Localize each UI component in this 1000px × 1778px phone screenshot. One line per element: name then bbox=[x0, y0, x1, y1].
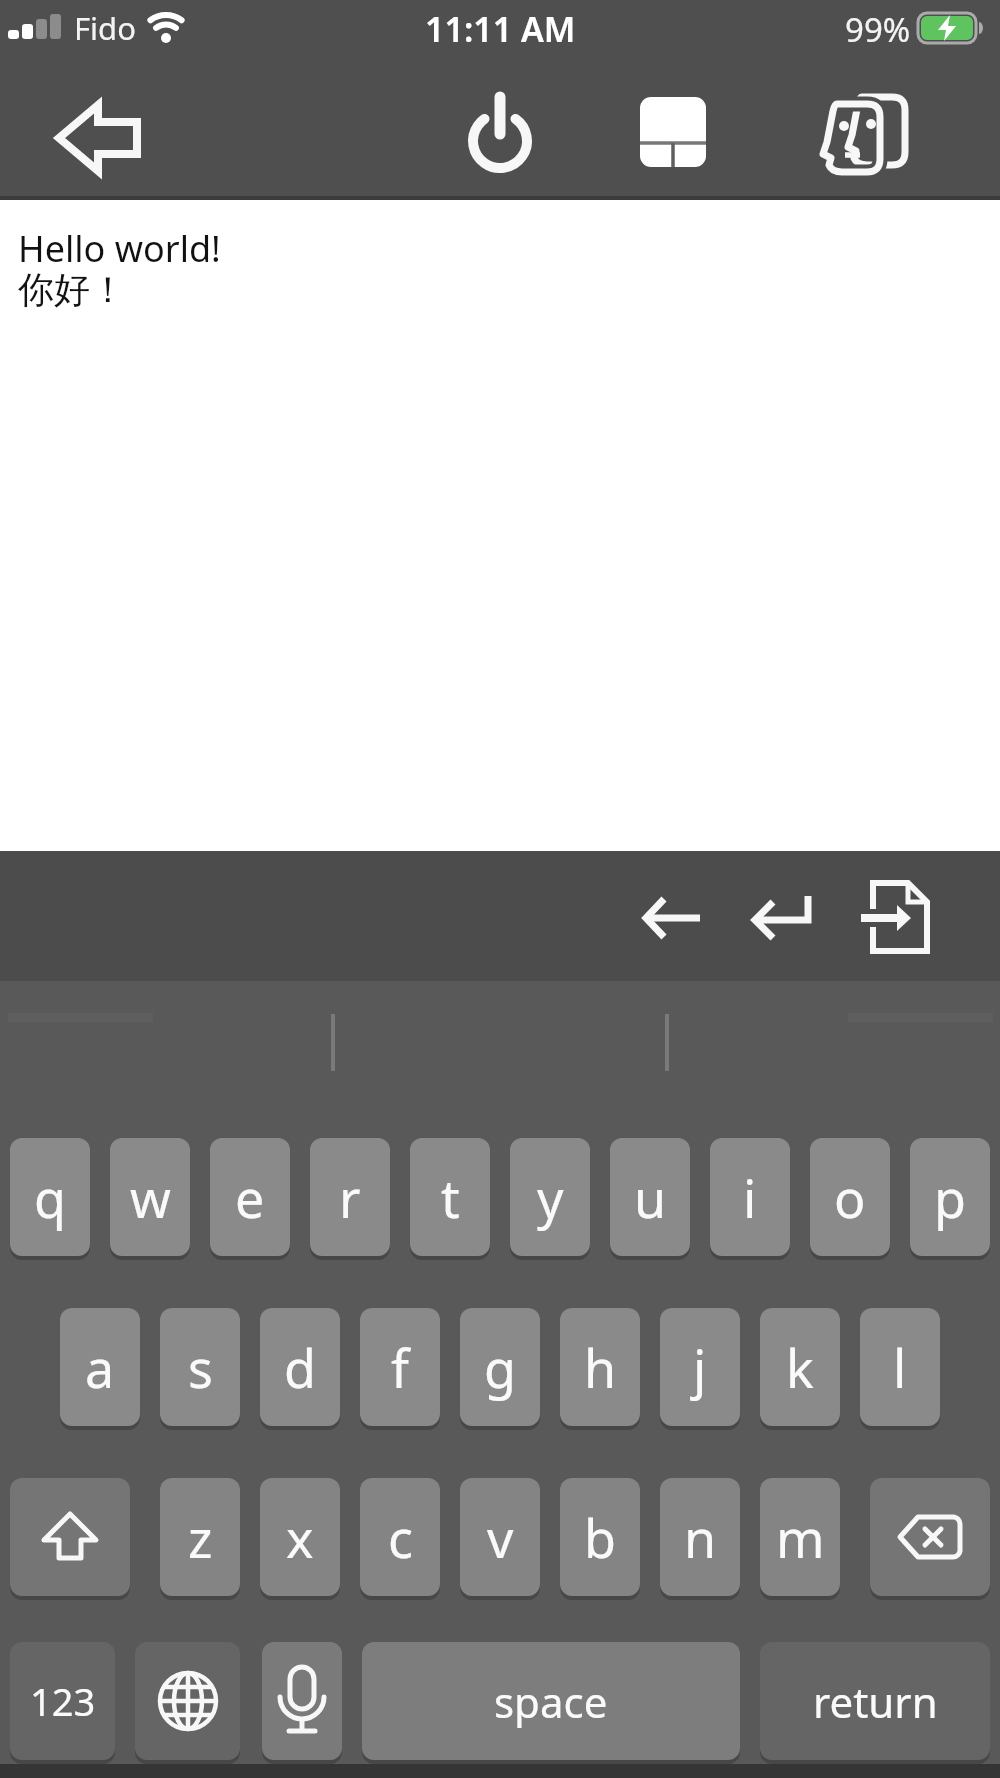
staticText: n bbox=[684, 1502, 717, 1573]
button[interactable]: a bbox=[60, 1308, 140, 1426]
button[interactable] bbox=[618, 79, 728, 184]
staticText: e bbox=[235, 1162, 265, 1233]
staticText: 11:11 AM bbox=[425, 6, 576, 52]
button[interactable]: i bbox=[710, 1138, 790, 1256]
button[interactable]: 123 bbox=[10, 1642, 115, 1760]
staticText: w bbox=[130, 1162, 171, 1233]
staticText: return bbox=[813, 1673, 938, 1730]
staticText: v bbox=[487, 1502, 514, 1573]
staticText: a bbox=[85, 1332, 115, 1403]
staticText: Fido bbox=[74, 7, 136, 49]
button[interactable]: f bbox=[360, 1308, 440, 1426]
button[interactable]: u bbox=[610, 1138, 690, 1256]
staticText: m bbox=[776, 1502, 825, 1573]
staticText: i bbox=[743, 1162, 757, 1233]
button[interactable]: g bbox=[460, 1308, 540, 1426]
staticText: 123 bbox=[30, 1675, 96, 1727]
staticText: 99% bbox=[845, 7, 911, 52]
staticText: j bbox=[693, 1332, 707, 1403]
staticText: space bbox=[494, 1673, 608, 1730]
button[interactable]: x bbox=[260, 1478, 340, 1596]
button[interactable] bbox=[10, 1478, 130, 1596]
button[interactable]: j bbox=[660, 1308, 740, 1426]
staticText: r bbox=[339, 1162, 361, 1233]
button[interactable]: h bbox=[560, 1308, 640, 1426]
button[interactable]: c bbox=[360, 1478, 440, 1596]
button[interactable]: d bbox=[260, 1308, 340, 1426]
staticText: t bbox=[441, 1162, 460, 1233]
staticText: u bbox=[634, 1162, 667, 1233]
staticText: y bbox=[537, 1162, 564, 1233]
button[interactable]: return bbox=[760, 1642, 990, 1760]
button[interactable] bbox=[845, 871, 950, 963]
staticText: q bbox=[34, 1162, 66, 1233]
button[interactable]: p bbox=[910, 1138, 990, 1256]
staticText: k bbox=[786, 1332, 814, 1403]
staticText: o bbox=[834, 1162, 866, 1233]
staticText: b bbox=[584, 1502, 616, 1573]
button[interactable]: q bbox=[10, 1138, 90, 1256]
button[interactable]: v bbox=[460, 1478, 540, 1596]
button[interactable]: n bbox=[660, 1478, 740, 1596]
button[interactable]: t bbox=[410, 1138, 490, 1256]
button[interactable] bbox=[870, 1478, 990, 1596]
staticText: l bbox=[893, 1332, 907, 1403]
button[interactable]: k bbox=[760, 1308, 840, 1426]
button[interactable] bbox=[805, 85, 920, 190]
button[interactable]: y bbox=[510, 1138, 590, 1256]
button[interactable]: o bbox=[810, 1138, 890, 1256]
button[interactable] bbox=[262, 1642, 342, 1760]
button[interactable]: e bbox=[210, 1138, 290, 1256]
button[interactable]: l bbox=[860, 1308, 940, 1426]
staticText: p bbox=[934, 1162, 966, 1233]
button[interactable] bbox=[135, 1642, 240, 1760]
button[interactable]: space bbox=[362, 1642, 740, 1760]
button[interactable]: z bbox=[160, 1478, 240, 1596]
button[interactable]: r bbox=[310, 1138, 390, 1256]
button[interactable] bbox=[625, 880, 720, 955]
staticText: f bbox=[391, 1332, 409, 1403]
staticText: d bbox=[284, 1332, 316, 1403]
button[interactable] bbox=[40, 85, 155, 190]
button[interactable]: w bbox=[110, 1138, 190, 1256]
button[interactable]: b bbox=[560, 1478, 640, 1596]
staticText: c bbox=[388, 1502, 413, 1573]
button[interactable]: m bbox=[760, 1478, 840, 1596]
staticText: Hello world! 你好！ bbox=[18, 224, 221, 312]
button[interactable]: s bbox=[160, 1308, 240, 1426]
button[interactable] bbox=[733, 880, 828, 955]
staticText: z bbox=[188, 1502, 213, 1573]
button[interactable] bbox=[445, 80, 555, 185]
staticText: g bbox=[484, 1332, 516, 1403]
staticText: s bbox=[188, 1332, 213, 1403]
staticText: h bbox=[584, 1332, 617, 1403]
staticText: x bbox=[286, 1502, 314, 1573]
